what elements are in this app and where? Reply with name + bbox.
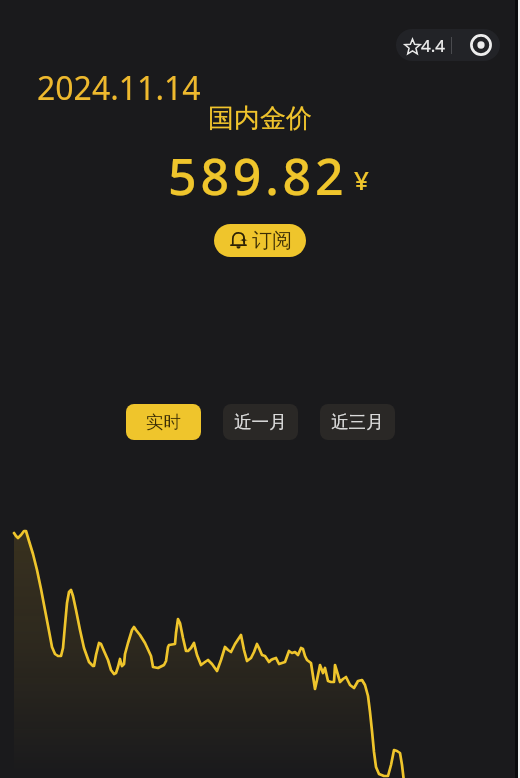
staticText: 订阅 [252,228,292,253]
button[interactable]: 近一月 [223,404,298,440]
button[interactable]: 近三月 [320,404,395,440]
button[interactable]: 实时 [126,404,201,440]
staticText: 国内金价 [0,102,520,135]
staticText: 近一月 [234,411,287,433]
staticText: 2024.11.14 [37,66,201,110]
staticText: 4.4 [421,34,446,57]
staticText: 实时 [146,411,181,433]
button[interactable]: Rating 4.4 [396,29,451,61]
button[interactable]: More options [452,29,500,61]
staticText: 589.82 [168,142,348,210]
button[interactable]: 订阅 [214,224,306,257]
staticText: 近三月 [331,411,384,433]
staticText: ¥ [354,162,369,197]
